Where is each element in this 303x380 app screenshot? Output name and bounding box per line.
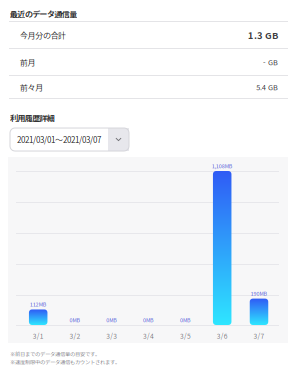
staticText: 3/7 [253,331,264,341]
staticText: 3/1 [33,331,44,341]
staticText: 利用履歴詳細 [10,112,55,124]
staticText: 1,108MB [212,162,233,170]
staticText: 112MB [30,300,47,308]
staticText: 3/4 [143,331,154,341]
staticText: 前月 [20,56,36,68]
staticText: 5.4 GB [256,82,278,92]
staticText: 今月分の合計 [20,29,66,41]
staticText: 最近のデータ通信量 [10,8,77,20]
staticText: 前々月 [20,81,43,93]
staticText: 3/6 [217,331,228,341]
staticText: 3/3 [106,331,117,341]
staticText: - GB [263,57,278,67]
staticText: ※速度制限中のデータ通信もカウントされます。 [10,358,120,366]
staticText: 3/5 [180,331,191,341]
button[interactable]: 2021/03/01〜2021/03/07 [10,128,129,151]
staticText: 2021/03/01〜2021/03/07 [17,134,101,145]
staticText: 0MB [180,316,191,324]
staticText: 0MB [143,316,154,324]
staticText: ※前日までのデータ通信量の目安です。 [10,350,100,358]
staticText: 3/2 [69,331,80,341]
staticText: 0MB [106,316,117,324]
staticText: 190MB [250,290,267,297]
staticText: 1.3 GB [248,28,278,42]
staticText: 0MB [69,316,80,324]
